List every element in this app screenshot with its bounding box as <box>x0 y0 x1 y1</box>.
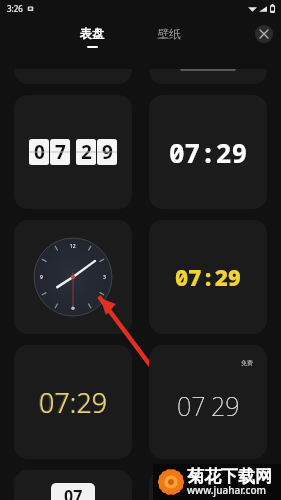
staticText: 07 <box>64 485 83 500</box>
staticText: 12 <box>70 243 76 250</box>
button[interactable]: Watch face <box>14 345 132 459</box>
staticText: 表盘 <box>80 26 104 41</box>
button[interactable]: Watch face <box>14 470 132 500</box>
staticText: 菊花下载网 <box>187 466 272 487</box>
staticText: 3:26 <box>7 3 23 14</box>
button[interactable]: Watch face <box>149 345 267 459</box>
staticText: 壁纸 <box>157 26 181 41</box>
staticText: 免费 <box>241 359 253 367</box>
staticText: 9 <box>102 139 113 165</box>
button[interactable]: Watch face <box>14 220 132 334</box>
button[interactable]: Watch face <box>149 470 267 500</box>
staticText: 07:29 <box>38 384 108 421</box>
button[interactable]: Watch face <box>149 69 267 84</box>
staticText: 07:29 <box>175 262 242 292</box>
staticText: 29 <box>211 389 240 423</box>
button[interactable]: 表盘 <box>72 23 112 51</box>
button[interactable]: Watch face <box>149 220 267 334</box>
button[interactable]: Watch face <box>149 95 267 209</box>
staticText: www.juahar.com <box>187 483 267 497</box>
staticText: 7 <box>55 139 66 165</box>
staticText: 07:29 <box>169 135 248 170</box>
staticText: 07 <box>177 389 206 423</box>
staticText: 9 <box>40 274 43 281</box>
staticText: 2 <box>81 139 92 165</box>
staticText: 07:29 <box>39 384 108 421</box>
staticText: 0 <box>34 139 45 165</box>
button[interactable]: Watch face <box>14 95 132 209</box>
staticText: 3 <box>103 274 106 281</box>
button[interactable]: Close <box>255 25 273 43</box>
button[interactable]: 壁纸 <box>149 23 189 44</box>
